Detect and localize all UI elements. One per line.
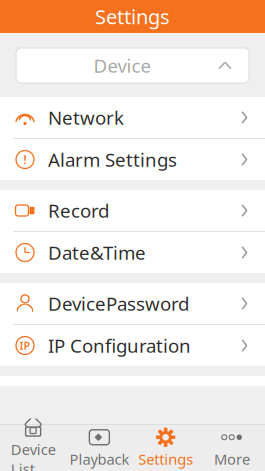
staticText: Date&Time [48, 240, 146, 265]
staticText: Network [48, 105, 124, 130]
button[interactable]: IP [0, 325, 265, 366]
button[interactable]: Device [16, 48, 249, 83]
staticText: Version&Upgrade [48, 384, 204, 409]
button[interactable]: Version&Upgrade [0, 376, 265, 418]
staticText: Settings [95, 3, 170, 30]
button[interactable]: Date&Time [0, 232, 265, 273]
button[interactable]: Playback [66, 425, 132, 471]
staticText: Settings [138, 449, 193, 469]
staticText: IP Configuration [48, 333, 191, 358]
button[interactable]: Settings [132, 425, 199, 471]
button[interactable]: Record [0, 190, 265, 232]
button[interactable]: Device List [0, 425, 66, 471]
staticText: Device List [11, 439, 56, 471]
staticText: Device [93, 53, 151, 78]
button[interactable]: More [199, 425, 265, 471]
button[interactable]: DevicePassword [0, 283, 265, 325]
button[interactable]: Alarm Settings [0, 139, 265, 180]
staticText: Record [48, 198, 109, 223]
staticText: IP [19, 338, 30, 353]
staticText: DevicePassword [48, 291, 189, 316]
staticText: Playback [69, 449, 129, 469]
staticText: Alarm Settings [48, 147, 177, 172]
button[interactable]: Network [0, 97, 265, 139]
staticText: More [214, 449, 250, 469]
